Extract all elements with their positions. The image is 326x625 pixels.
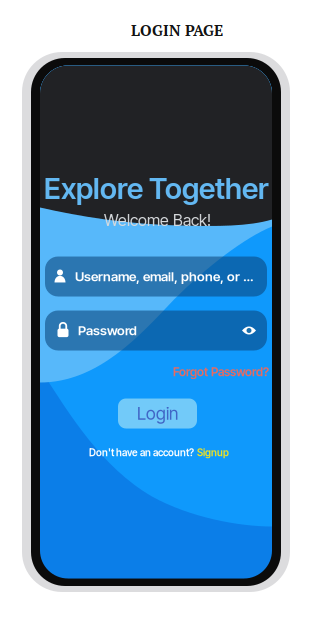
button[interactable]: Login [118, 398, 197, 428]
staticText: Explore Together [44, 170, 269, 206]
staticText: Don't have an account? [89, 446, 194, 459]
button[interactable]: Username, email, phone, or … [45, 256, 267, 296]
button[interactable]: Forgot Password? [173, 364, 269, 379]
staticText: Signup [197, 446, 229, 459]
staticText: LOGIN PAGE [131, 20, 223, 40]
staticText: Username, email, phone, or … [75, 268, 253, 284]
staticText: Password [78, 322, 137, 338]
staticText: Forgot Password? [173, 364, 269, 379]
staticText: Login [137, 403, 178, 424]
button[interactable]: Password [45, 310, 267, 350]
staticText: Welcome Back! [104, 210, 211, 230]
button[interactable]: Signup [197, 446, 229, 459]
